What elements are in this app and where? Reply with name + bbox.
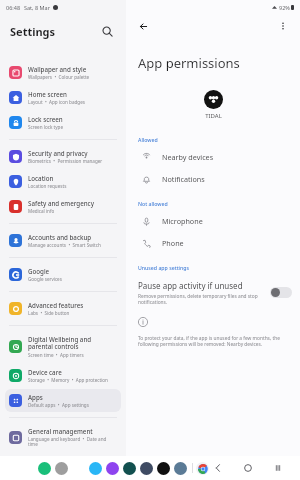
staticText: Microphone [162, 216, 203, 226]
button[interactable]: App shortcut [140, 462, 153, 475]
staticText: Nearby devices [162, 152, 214, 162]
button[interactable]: Nearby devices [126, 146, 300, 168]
staticText: Sat, 8 Mar [24, 4, 50, 11]
button[interactable]: Pause app activity if unused toggle [270, 287, 292, 298]
staticText: Storage • Memory • App protection [28, 377, 108, 383]
staticText: Screen lock type [28, 124, 63, 130]
button[interactable]: Wallpaper and style [5, 61, 121, 84]
staticText: Labs • Side button [28, 310, 70, 316]
staticText: Allowed [138, 136, 158, 143]
staticText: Safety and emergency [28, 199, 94, 207]
staticText: To protect your data, if the app is unus… [138, 335, 286, 347]
staticText: Google [28, 267, 50, 275]
staticText: Layout • App icon badges [28, 99, 85, 105]
button[interactable]: Location [5, 170, 121, 193]
button[interactable]: Back [134, 17, 152, 35]
button[interactable]: Recents [270, 460, 286, 476]
staticText: Location requests [28, 183, 67, 189]
button[interactable]: Security and privacy [5, 145, 121, 168]
staticText: Manage accounts • Smart Switch [28, 242, 101, 248]
button[interactable]: App shortcut [157, 462, 170, 475]
button[interactable]: More options [274, 17, 292, 35]
button[interactable]: General management [5, 423, 121, 452]
staticText: Unused app settings [138, 264, 190, 271]
staticText: Lock screen [28, 115, 63, 123]
staticText: 92% [279, 4, 290, 11]
staticText: Not allowed [138, 200, 168, 207]
button[interactable]: Digital Wellbeing and parental controls [5, 331, 121, 362]
button[interactable]: Microphone [126, 210, 300, 232]
button[interactable]: App shortcut [174, 462, 187, 475]
button[interactable]: Home screen [5, 86, 121, 109]
staticText: Advanced features [28, 301, 84, 309]
button[interactable]: App shortcut [123, 462, 136, 475]
button[interactable]: Notifications [126, 168, 300, 190]
button[interactable]: Device care [5, 364, 121, 387]
button[interactable]: Advanced features [5, 297, 121, 320]
staticText: Google services [28, 276, 62, 282]
staticText: Medical info [28, 208, 55, 214]
staticText: Biometrics • Permission manager [28, 158, 103, 164]
button[interactable]: Back [210, 460, 226, 476]
staticText: Remove permissions, delete temporary fil… [138, 293, 262, 305]
staticText: TIDAL [205, 112, 222, 120]
button[interactable]: Phone [126, 232, 300, 254]
staticText: Wallpapers • Colour palette [28, 74, 90, 80]
staticText: 06:48 [6, 4, 21, 11]
staticText: Digital Wellbeing and parental controls [28, 335, 117, 351]
staticText: Device care [28, 368, 62, 376]
button[interactable]: App shortcut [106, 462, 119, 475]
button[interactable]: Google [5, 263, 121, 286]
staticText: Accounts and backup [28, 233, 92, 241]
staticText: General management [28, 427, 93, 435]
button[interactable]: Accounts and backup [5, 229, 121, 252]
button[interactable]: Chrome [196, 462, 209, 475]
button[interactable]: App shortcut [38, 462, 51, 475]
button[interactable]: Lock screen [5, 111, 121, 134]
staticText: Security and privacy [28, 149, 88, 157]
button[interactable]: App shortcut [89, 462, 102, 475]
staticText: Phone [162, 238, 184, 248]
staticText: Default apps • App settings [28, 402, 89, 408]
staticText: Location [28, 174, 54, 182]
button[interactable]: Apps [5, 389, 121, 412]
button[interactable]: Search settings [98, 22, 116, 40]
staticText: Settings [10, 24, 56, 39]
staticText: Apps [28, 393, 43, 401]
staticText: App permissions [138, 54, 240, 72]
button[interactable]: Pause app activity if unused [126, 278, 300, 307]
button[interactable]: Safety and emergency [5, 195, 121, 218]
staticText: Screen time • App timers [28, 352, 84, 358]
staticText: Language and keyboard • Date and time [28, 436, 117, 448]
staticText: Pause app activity if unused [138, 280, 243, 291]
staticText: Notifications [162, 174, 205, 184]
staticText: Wallpaper and style [28, 65, 87, 73]
button[interactable]: App shortcut [55, 462, 68, 475]
staticText: Home screen [28, 90, 67, 98]
button[interactable]: Home [240, 460, 256, 476]
